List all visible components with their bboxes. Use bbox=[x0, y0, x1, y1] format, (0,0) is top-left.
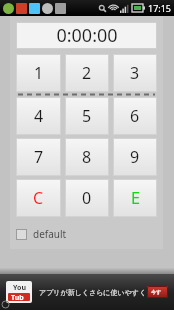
button[interactable]: 4 bbox=[16, 97, 61, 135]
staticText: アプリが新しくさらに使いやすく bbox=[39, 288, 147, 297]
button[interactable]: 0 bbox=[65, 179, 109, 217]
button[interactable]: 1 bbox=[16, 54, 61, 92]
staticText: 0:00:00 bbox=[56, 23, 118, 48]
staticText: 7 bbox=[34, 146, 44, 168]
staticText: 6 bbox=[130, 105, 140, 127]
staticText: 4 bbox=[34, 105, 44, 127]
button[interactable]: 3 bbox=[113, 54, 157, 92]
button[interactable]: 6 bbox=[113, 97, 157, 135]
staticText: 3 bbox=[130, 62, 140, 84]
staticText: Tube bbox=[11, 293, 27, 301]
staticText: C bbox=[33, 187, 44, 209]
staticText: E bbox=[131, 187, 140, 209]
button[interactable]: 2 bbox=[65, 54, 109, 92]
button[interactable]: default bbox=[16, 225, 67, 243]
button[interactable]: 8 bbox=[65, 138, 109, 176]
staticText: 8 bbox=[82, 146, 92, 168]
button[interactable]: E bbox=[113, 179, 157, 217]
staticText: 0 bbox=[82, 187, 92, 209]
button[interactable]: Advertisement bbox=[0, 274, 174, 310]
staticText: 2 bbox=[82, 62, 92, 84]
staticText: 今すぐダウンロード bbox=[151, 289, 164, 295]
staticText: 17:15 bbox=[148, 2, 172, 14]
staticText: 5 bbox=[82, 105, 92, 127]
button[interactable]: 7 bbox=[16, 138, 61, 176]
button[interactable]: C bbox=[16, 179, 61, 217]
staticText: 1 bbox=[34, 62, 44, 84]
button[interactable]: 今すぐダウンロード bbox=[151, 289, 164, 295]
staticText: You bbox=[13, 283, 26, 293]
button[interactable]: 5 bbox=[65, 97, 109, 135]
staticText: default bbox=[33, 227, 67, 241]
staticText: 9 bbox=[130, 146, 140, 168]
button[interactable]: 9 bbox=[113, 138, 157, 176]
